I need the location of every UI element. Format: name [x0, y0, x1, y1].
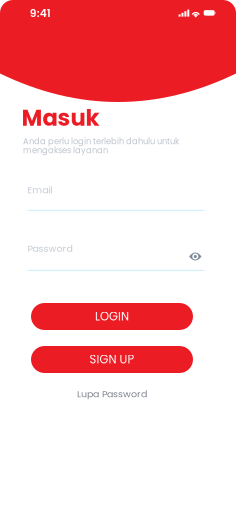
staticText: 9:41 [30, 6, 51, 21]
button[interactable]: SIGN UP [31, 346, 193, 373]
staticText: SIGN UP [89, 351, 134, 368]
staticText: Password [27, 242, 72, 255]
button[interactable]: Lupa Password [31, 387, 193, 401]
staticText: Anda perlu login terlebih dahulu untuk [23, 135, 179, 147]
staticText: mengakses layanan [23, 145, 108, 156]
staticText: Lupa Password [77, 387, 147, 401]
staticText: LOGIN [95, 308, 129, 325]
button[interactable]: Show password [184, 247, 207, 266]
staticText: Email [27, 183, 52, 196]
staticText: Masuk [21, 102, 99, 134]
button[interactable]: LOGIN [31, 303, 193, 330]
